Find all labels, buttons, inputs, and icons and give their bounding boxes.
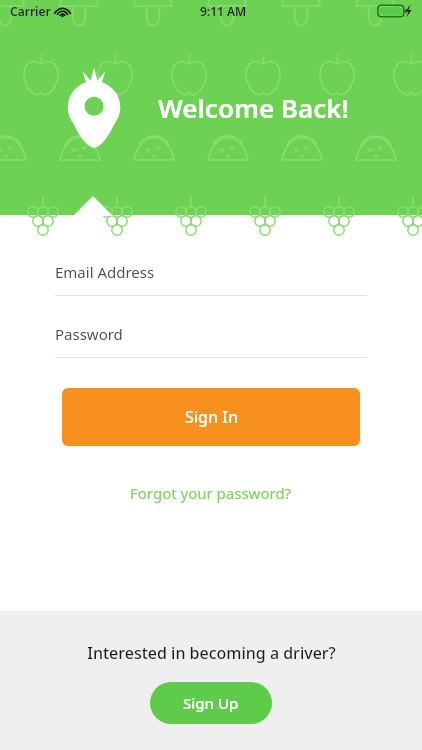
- staticText: Forgot your password?: [130, 483, 292, 503]
- staticText: Carrier: [10, 3, 51, 19]
- button[interactable]: Sign In: [62, 388, 360, 446]
- button[interactable]: Email Address: [55, 262, 367, 296]
- staticText: 9:11 AM: [200, 3, 247, 19]
- staticText: Sign Up: [183, 693, 239, 713]
- staticText: Interested in becoming a driver?: [87, 642, 336, 664]
- staticText: Welcome Back!: [158, 90, 349, 125]
- button[interactable]: Sign Up: [150, 682, 272, 724]
- staticText: Sign In: [185, 406, 238, 428]
- button[interactable]: Password: [55, 324, 367, 358]
- staticText: Password: [55, 324, 123, 344]
- button[interactable]: Forgot your password?: [122, 479, 300, 507]
- staticText: Email Address: [55, 262, 155, 282]
